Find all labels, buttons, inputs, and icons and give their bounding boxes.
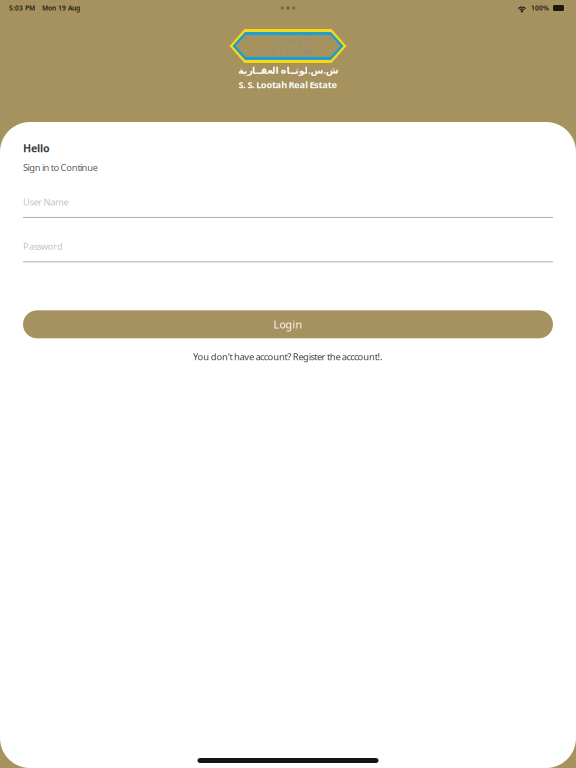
staticText: Password bbox=[23, 240, 63, 252]
button[interactable]: Login bbox=[23, 310, 553, 338]
button[interactable]: User Name bbox=[23, 196, 553, 218]
staticText: Login bbox=[273, 317, 302, 331]
staticText: ش.س.لوتــاه العقــارية bbox=[238, 64, 338, 76]
staticText: Hello bbox=[23, 141, 50, 155]
staticText: Sign in to Continue bbox=[23, 161, 98, 174]
staticText: 100% bbox=[531, 4, 549, 12]
staticText: 5:03 PM bbox=[9, 4, 35, 12]
staticText: S.S.LOOTAH bbox=[262, 47, 314, 55]
staticText: You don't have account? Register the acc… bbox=[193, 350, 383, 363]
button[interactable]: You don't have account? Register the acc… bbox=[23, 350, 553, 363]
staticText: Mon 19 Aug bbox=[42, 4, 80, 12]
staticText: S. S. Lootah Real Estate bbox=[239, 78, 337, 91]
button[interactable]: Password bbox=[23, 240, 553, 262]
staticText: User Name bbox=[23, 196, 69, 208]
staticText: ﺍﻟﻌﻘﺎﺭﻳﺔ bbox=[267, 36, 309, 46]
